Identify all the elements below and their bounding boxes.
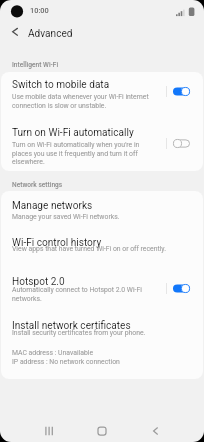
staticText: Turn on Wi-Fi automatically when you're …: [12, 141, 140, 165]
staticText: Automatically connect to Hotspot 2.0 Wi-…: [12, 286, 142, 302]
staticText: Install security certificates from your …: [12, 329, 146, 337]
staticText: Manage networks: [12, 200, 93, 212]
staticText: Intelligent Wi-Fi: [12, 61, 59, 69]
button[interactable]: Recent apps: [32, 413, 66, 442]
staticText: Switch to mobile data: [12, 79, 110, 91]
staticText: MAC address : Unavailable IP address : N…: [12, 349, 120, 365]
button[interactable]: Back: [138, 413, 172, 442]
staticText: Advanced: [28, 28, 73, 40]
button[interactable]: [1, 227, 203, 264]
button[interactable]: [1, 191, 203, 227]
button[interactable]: Switch on: [173, 283, 190, 294]
staticText: View apps that have turned Wi-Fi on or o…: [12, 245, 167, 253]
button[interactable]: [1, 121, 203, 171]
button[interactable]: Home: [85, 413, 119, 442]
button[interactable]: Navigate up: [4, 21, 25, 42]
button[interactable]: Switch on: [173, 86, 190, 97]
staticText: Wi-Fi control history: [12, 237, 102, 249]
button[interactable]: [1, 72, 203, 121]
staticText: Network settings: [12, 181, 63, 189]
staticText: Turn on Wi-Fi automatically: [12, 127, 134, 139]
staticText: Install network certificates: [12, 320, 131, 332]
button[interactable]: [1, 264, 203, 309]
button[interactable]: [1, 309, 203, 343]
staticText: Hotspot 2.0: [12, 276, 65, 288]
button[interactable]: Switch off: [173, 138, 190, 149]
staticText: Manage your saved Wi-Fi networks.: [12, 213, 120, 221]
staticText: 10:00: [30, 6, 49, 15]
staticText: Use mobile data whenever your Wi-Fi inte…: [12, 93, 149, 109]
